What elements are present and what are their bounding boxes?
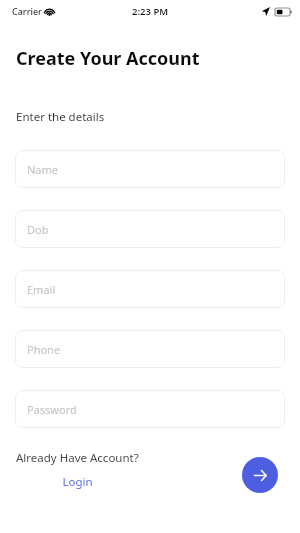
staticText: Password	[27, 402, 77, 417]
staticText: Dob	[27, 222, 49, 237]
staticText: Name	[27, 162, 59, 177]
staticText: Enter the details	[16, 109, 105, 125]
button[interactable]: Password	[15, 390, 285, 428]
staticText: Carrier	[12, 5, 42, 17]
staticText: Phone	[27, 342, 61, 357]
staticText: Create Your Account	[16, 46, 200, 71]
button[interactable]: Name	[15, 150, 285, 188]
button[interactable]: Phone	[15, 330, 285, 368]
button[interactable]: Dob	[15, 210, 285, 248]
staticText: 2:23 PM	[132, 5, 169, 18]
staticText: Login	[62, 474, 93, 490]
staticText: Already Have Account?	[16, 450, 139, 466]
button[interactable]: Login	[56, 473, 99, 491]
staticText: Email	[27, 282, 56, 297]
button[interactable]: Submit	[242, 457, 278, 493]
button[interactable]: Email	[15, 270, 285, 308]
